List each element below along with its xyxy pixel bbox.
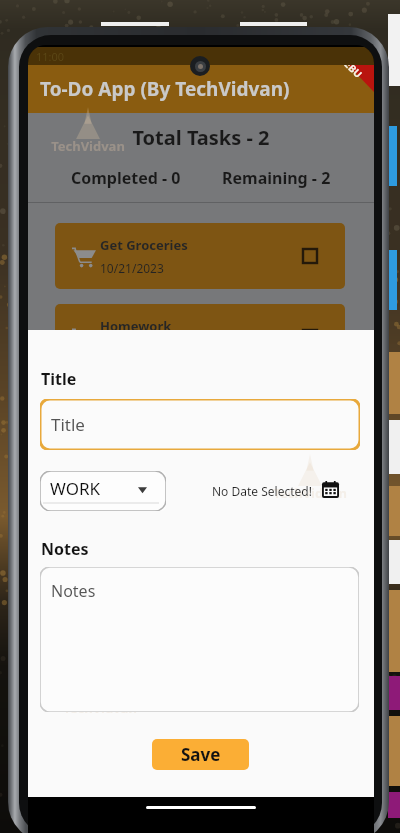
staticText: Get Groceries	[100, 236, 188, 254]
staticText: Title	[41, 368, 77, 390]
button[interactable]: Homework	[55, 304, 345, 370]
staticText: Completed - 0	[71, 167, 181, 189]
staticText: 10/21/2023	[100, 260, 164, 276]
button[interactable]: WORK	[40, 471, 166, 511]
staticText: Notes	[51, 580, 96, 602]
staticText: To-Do App (By TechVidvan)	[40, 76, 290, 102]
button[interactable]: Title	[40, 399, 360, 450]
button[interactable]: Save	[152, 739, 249, 770]
staticText: Save	[181, 743, 221, 766]
staticText: TechVidvan	[51, 137, 125, 155]
staticText: Remaining - 2	[222, 167, 331, 189]
staticText: No Date Selected!	[212, 483, 312, 499]
staticText: 11:00	[36, 49, 65, 64]
staticText: DEBUG	[338, 65, 370, 84]
staticText: Notes	[41, 538, 89, 560]
button[interactable]: Toggle task done	[303, 249, 317, 263]
staticText: TechVidvan	[273, 484, 347, 502]
staticText: Homework	[100, 317, 172, 335]
button[interactable]: Get Groceries	[55, 223, 345, 289]
staticText: WORK	[50, 477, 101, 500]
staticText: TechVidvan	[63, 699, 137, 717]
button[interactable]: Pick date	[322, 481, 339, 498]
button[interactable]: Notes	[40, 567, 359, 712]
staticText: Title	[51, 413, 85, 436]
staticText: Total Tasks - 2	[28, 124, 374, 151]
